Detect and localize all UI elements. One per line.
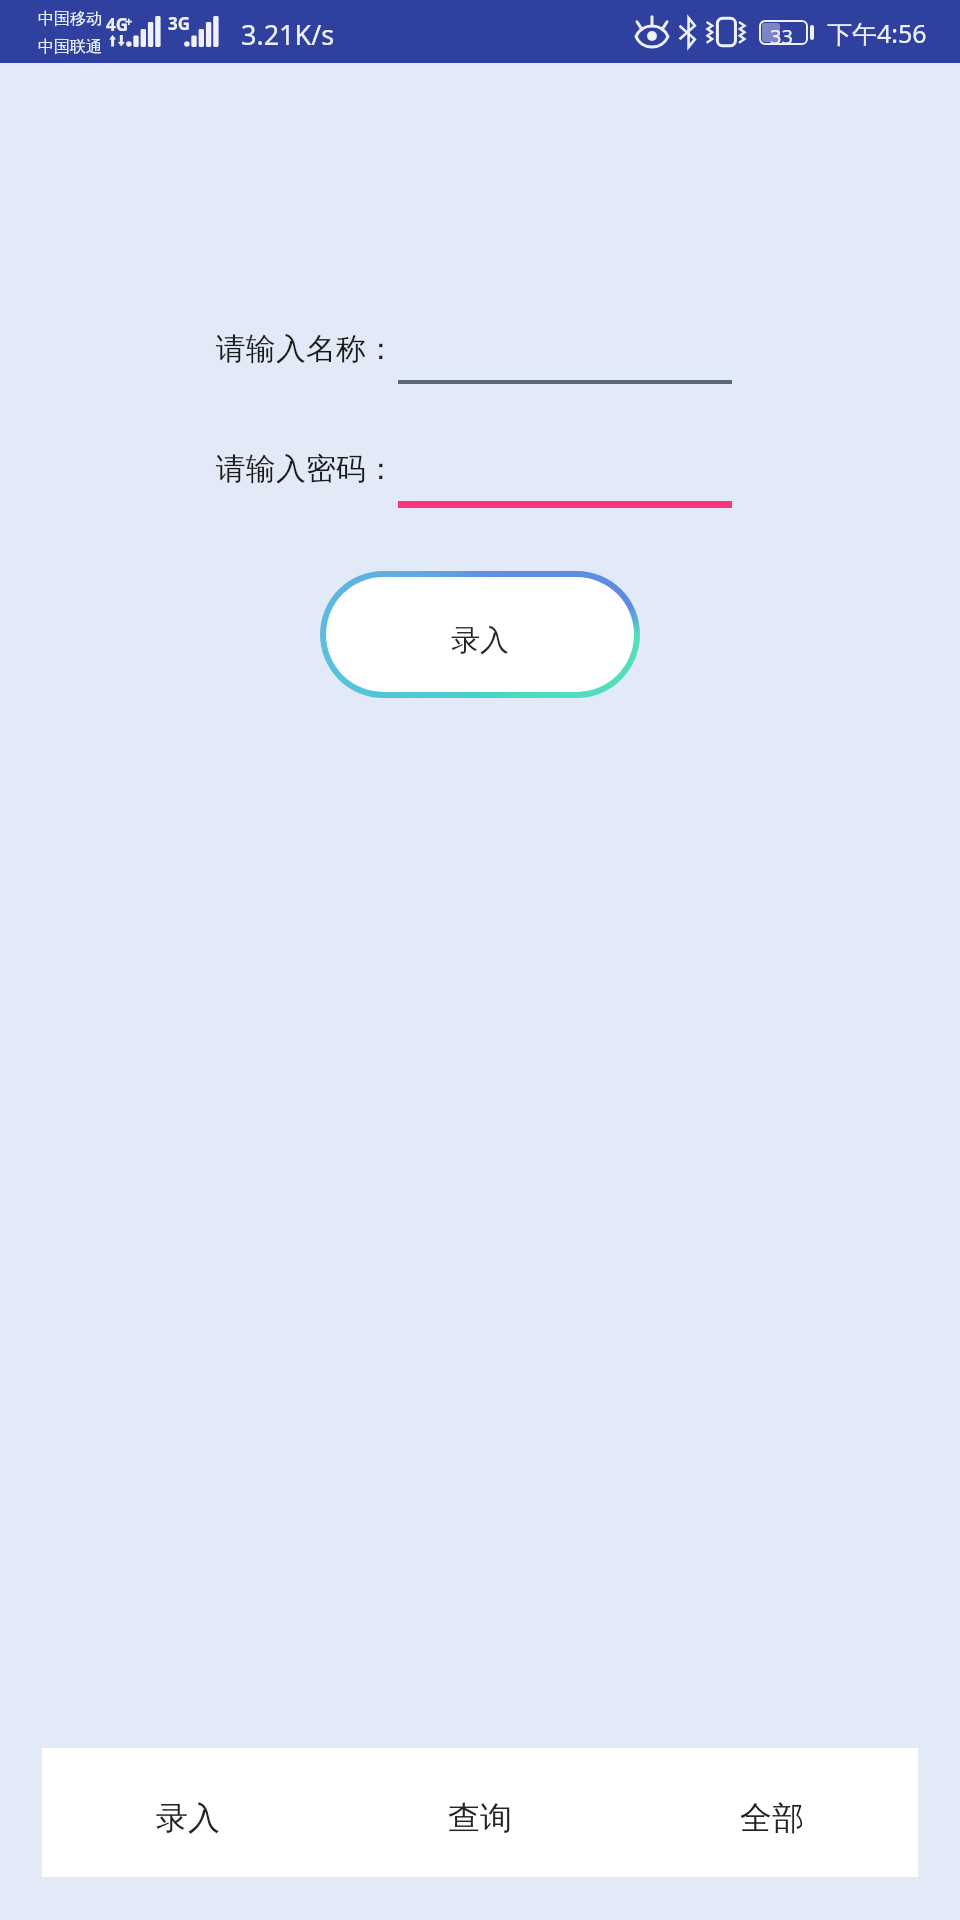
staticText: 查询 xyxy=(448,1798,512,1838)
staticText: 录入 xyxy=(156,1798,220,1838)
button[interactable]: 全部 xyxy=(626,1748,918,1877)
staticText: + xyxy=(125,12,133,30)
button[interactable]: Password input field xyxy=(398,444,732,508)
staticText: 3.21K/s xyxy=(241,16,335,53)
staticText: 下午4:56 xyxy=(827,16,927,50)
button[interactable]: 录入 xyxy=(326,577,634,692)
staticText: 录入 xyxy=(451,622,509,659)
button[interactable]: 录入 xyxy=(42,1748,334,1877)
staticText: 请输入名称： xyxy=(216,330,396,368)
staticText: 中国移动 xyxy=(38,9,102,29)
other: Eye comfort xyxy=(636,16,668,48)
staticText: 请输入密码： xyxy=(216,450,396,488)
other: Vibrate xyxy=(705,16,747,48)
staticText: 全部 xyxy=(740,1798,804,1838)
staticText: 4G xyxy=(106,13,129,36)
other: Bluetooth xyxy=(677,17,698,48)
staticText: 中国联通 xyxy=(38,37,102,57)
staticText: 3G xyxy=(168,12,191,35)
button[interactable]: 查询 xyxy=(334,1748,626,1877)
button[interactable]: Name input field xyxy=(398,320,732,384)
staticText: 33 xyxy=(770,23,793,50)
other: Battery xyxy=(759,20,814,45)
